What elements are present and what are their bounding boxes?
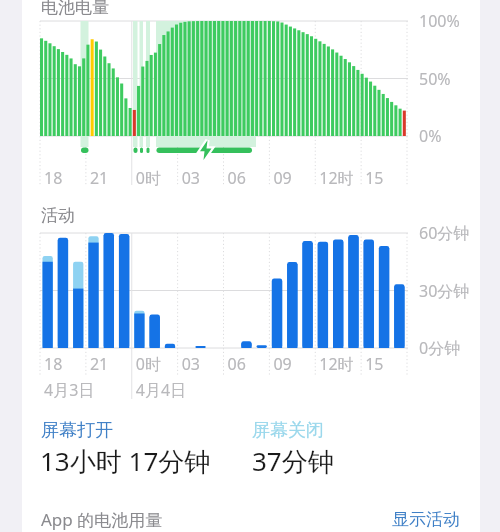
button[interactable] bbox=[0, 0, 500, 532]
